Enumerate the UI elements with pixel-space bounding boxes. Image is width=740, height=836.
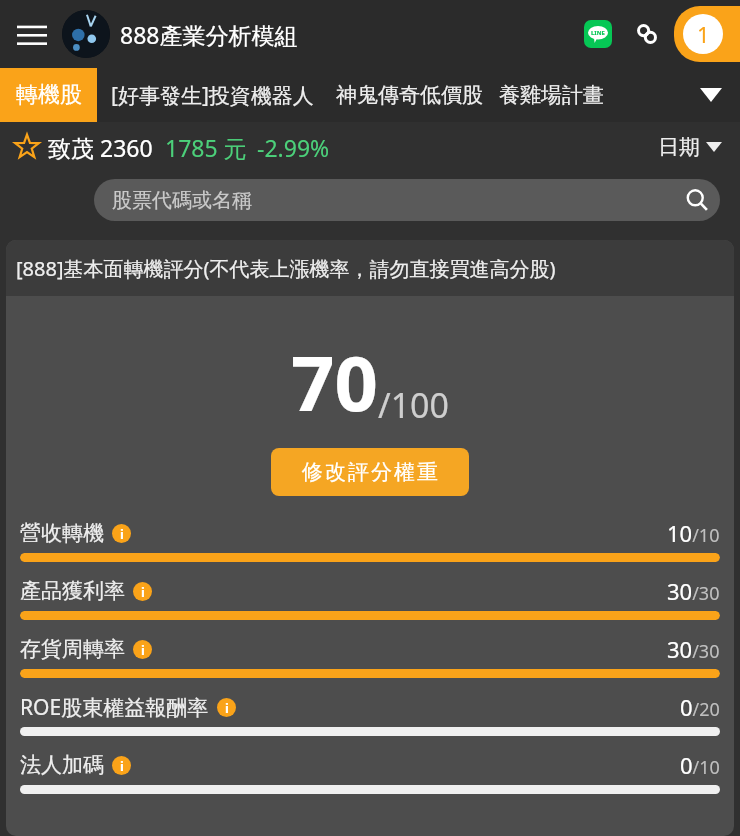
other: Search [680,183,714,217]
button[interactable]: Share link [628,15,666,53]
staticText: 0/20 [680,692,720,722]
staticText: ROE股東權益報酬率 [20,693,209,722]
staticText: -2.99% [257,132,330,163]
button[interactable]: [好事發生]投資機器人 [111,81,314,110]
button[interactable]: Notifications: 1 [674,6,740,62]
button[interactable]: ROE股東權益報酬率 [6,692,734,750]
button[interactable]: LINE [580,16,616,52]
staticText: 存貨周轉率 [20,636,125,662]
button[interactable]: 法人加碼 [6,750,734,808]
staticText: 888產業分析模組 [120,19,298,50]
staticText: 致茂 2360 [48,132,153,163]
button[interactable]: 養雞場計畫 [499,82,604,108]
staticText: 1785 元 [165,132,247,163]
button[interactable]: 營收轉機 [6,518,734,576]
button[interactable]: 股票代碼或名稱 [94,179,720,221]
staticText: 10/10 [667,518,720,548]
staticText: LINE [591,29,605,37]
staticText: 70 [291,330,378,434]
button[interactable]: 神鬼傳奇低價股 [336,82,483,108]
staticText: 股票代碼或名稱 [112,188,252,213]
staticText: [好事發生]投資機器人 [111,81,314,110]
staticText: 養雞場計畫 [499,82,604,108]
staticText: 轉機股 [16,81,82,109]
staticText: i [141,641,145,659]
staticText: 30/30 [667,576,720,606]
button[interactable]: 產品獲利率 [6,576,734,634]
staticText: 0/10 [680,750,720,780]
staticText: 1 [697,19,710,49]
staticText: 30/30 [667,634,720,664]
staticText: 修改評分權重 [301,459,439,485]
button[interactable]: 轉機股 [0,68,97,122]
staticText: i [141,583,145,601]
staticText: 日期 [658,134,700,160]
button[interactable]: Favourite [12,132,42,162]
button[interactable]: 修改評分權重 [271,448,469,496]
staticText: i [120,757,124,775]
staticText: 法人加碼 [20,752,104,778]
button[interactable]: Menu [8,10,56,58]
staticText: i [225,699,229,717]
button[interactable]: 存貨周轉率 [6,634,734,692]
staticText: [888]基本面轉機評分(不代表上漲機率，請勿直接買進高分股) [16,255,556,282]
button[interactable]: More tabs [688,72,734,118]
button[interactable]: 日期 [650,134,730,160]
staticText: 產品獲利率 [20,578,125,604]
staticText: /100 [378,382,449,428]
staticText: 神鬼傳奇低價股 [336,82,483,108]
staticText: i [120,525,124,543]
staticText: 營收轉機 [20,520,104,546]
